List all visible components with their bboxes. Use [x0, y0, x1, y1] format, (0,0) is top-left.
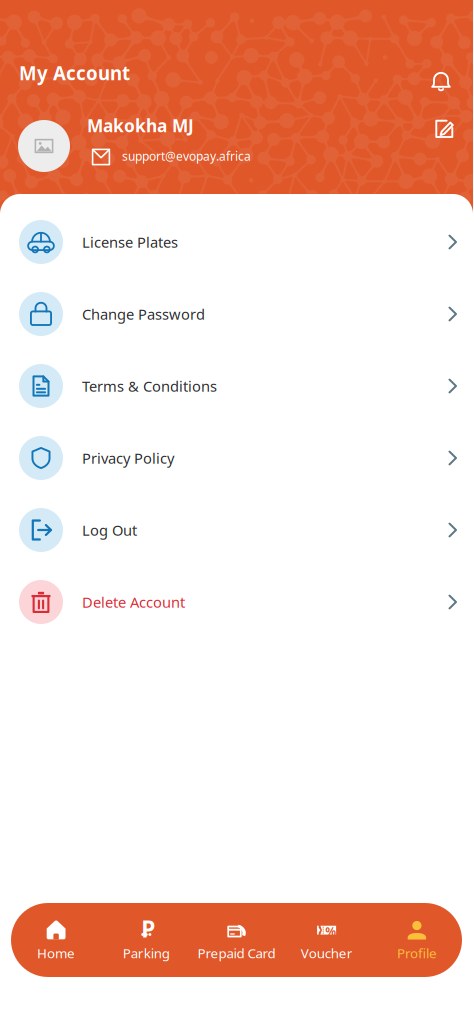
staticText: P [141, 914, 155, 944]
button[interactable]: Edit profile [424, 126, 464, 166]
staticText: Change Password [82, 304, 205, 324]
staticText: Log Out [82, 520, 137, 540]
button[interactable]: Change Password [0, 278, 473, 350]
button[interactable]: Delete Account [0, 566, 473, 638]
staticText: Voucher [301, 944, 353, 962]
staticText: Home [37, 944, 75, 962]
button[interactable]: % [282, 903, 372, 977]
staticText: License Plates [82, 232, 178, 252]
staticText: Delete Account [82, 592, 185, 612]
button[interactable]: Prepaid Card [191, 903, 282, 977]
staticText: Profile [397, 944, 437, 962]
button[interactable]: Log Out [0, 494, 473, 566]
button[interactable]: Privacy Policy [0, 422, 473, 494]
button[interactable]: P [101, 903, 191, 977]
staticText: Parking [123, 944, 170, 962]
button[interactable]: Home [11, 903, 101, 977]
staticText: % [325, 924, 336, 940]
staticText: Makokha MJ [87, 114, 194, 137]
staticText: support@evopay.africa [122, 148, 251, 164]
button[interactable]: Notifications [421, 53, 461, 93]
button[interactable]: Terms & Conditions [0, 350, 473, 422]
staticText: Privacy Policy [82, 448, 174, 468]
staticText: Prepaid Card [197, 944, 275, 962]
button[interactable]: Profile [372, 903, 462, 977]
staticText: My Account [19, 61, 130, 85]
staticText: Terms & Conditions [82, 376, 217, 396]
button[interactable]: License Plates [0, 206, 473, 278]
